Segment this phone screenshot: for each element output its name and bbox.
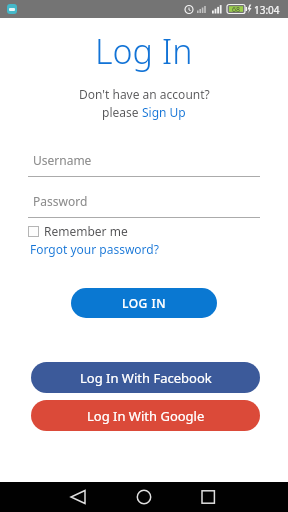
button[interactable]	[194, 490, 222, 504]
staticText: 13:04	[254, 3, 280, 17]
button[interactable]	[130, 490, 158, 504]
staticText: 68	[232, 5, 241, 15]
button[interactable]	[64, 490, 92, 504]
button[interactable]: Username	[28, 150, 260, 177]
button[interactable]: LOG IN	[71, 288, 217, 318]
button[interactable]: Password	[28, 191, 260, 218]
staticText: Log In	[95, 28, 193, 74]
button[interactable]: Forgot your password?	[30, 241, 159, 257]
button[interactable]: Sign Up	[142, 104, 186, 120]
staticText: Password	[33, 193, 88, 209]
button[interactable]: Remember me	[28, 223, 128, 239]
staticText: Log In With Google	[87, 407, 205, 425]
staticText: Log In With Facebook	[80, 369, 212, 387]
staticText: please	[102, 104, 142, 120]
staticText: Remember me	[44, 223, 128, 239]
staticText: Don't have an account?	[79, 86, 210, 102]
staticText: Username	[33, 152, 92, 168]
button[interactable]: Log In With Facebook	[31, 362, 260, 393]
button[interactable]: Log In With Google	[31, 400, 260, 431]
staticText: LOG IN	[122, 295, 166, 311]
